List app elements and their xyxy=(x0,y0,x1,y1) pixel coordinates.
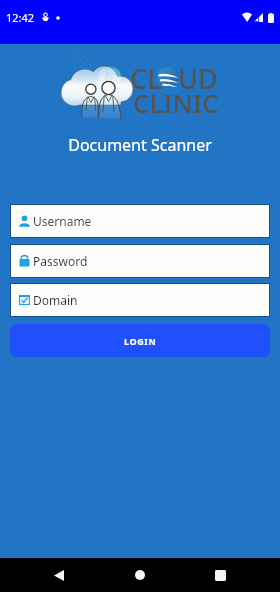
staticText: Domain xyxy=(33,292,78,308)
button[interactable]: Home xyxy=(117,558,163,592)
button[interactable]: Username xyxy=(11,205,269,237)
staticText: 12:42 xyxy=(6,10,35,25)
button[interactable]: LOGIN xyxy=(10,324,270,357)
staticText: Document Scanner xyxy=(0,134,280,156)
staticText: LOGIN xyxy=(124,335,157,347)
button[interactable]: Back xyxy=(36,558,82,592)
staticText: Password xyxy=(33,253,88,269)
button[interactable]: Password xyxy=(11,245,269,277)
staticText: CLINIC xyxy=(133,85,219,120)
button[interactable]: Domain xyxy=(11,284,269,316)
button[interactable]: Recent apps xyxy=(197,558,243,592)
staticText: Username xyxy=(33,213,92,229)
staticText: CL xyxy=(130,60,162,97)
staticText: UD xyxy=(178,60,218,97)
